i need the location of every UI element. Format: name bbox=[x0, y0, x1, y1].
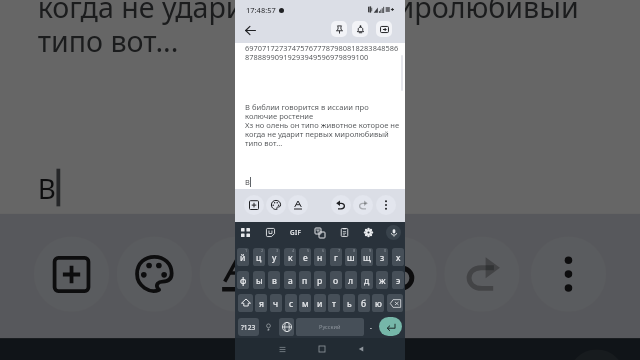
button[interactable]: Enter bbox=[379, 317, 402, 336]
button[interactable]: More bbox=[376, 195, 396, 215]
button[interactable]: Stickers bbox=[263, 225, 278, 240]
button[interactable]: х bbox=[392, 248, 404, 266]
button[interactable]: Undo bbox=[331, 195, 351, 215]
staticText: к bbox=[288, 252, 293, 264]
button[interactable]: ю bbox=[372, 294, 384, 312]
button[interactable]: Reminder bbox=[352, 21, 368, 37]
button[interactable]: щ bbox=[361, 248, 373, 266]
button[interactable]: й bbox=[237, 248, 249, 266]
button[interactable]: в bbox=[268, 271, 280, 289]
button[interactable]: GIF bbox=[199, 349, 256, 360]
button[interactable]: Format bbox=[288, 195, 308, 215]
staticText: 1 bbox=[245, 248, 248, 253]
button[interactable]: Change language bbox=[279, 318, 294, 336]
button[interactable]: я bbox=[255, 294, 267, 312]
button[interactable]: Add bbox=[244, 195, 264, 215]
staticText: 5 bbox=[307, 248, 310, 253]
button[interactable]: е bbox=[299, 248, 311, 266]
staticText: Русский bbox=[319, 323, 341, 331]
button[interactable]: Period bbox=[366, 318, 375, 336]
button[interactable]: Colour bbox=[117, 236, 192, 312]
button[interactable]: GIF bbox=[288, 225, 303, 240]
staticText: ц bbox=[256, 252, 262, 264]
staticText: 7 bbox=[338, 248, 341, 253]
button[interactable]: Translate bbox=[312, 225, 327, 240]
staticText: 2 bbox=[261, 248, 264, 253]
button[interactable]: д bbox=[361, 271, 373, 289]
button[interactable]: ф bbox=[237, 271, 249, 289]
staticText: ж bbox=[379, 275, 386, 287]
button[interactable]: Back bbox=[241, 21, 259, 39]
staticText: и bbox=[317, 298, 323, 310]
staticText: д bbox=[364, 275, 370, 287]
staticText: е bbox=[303, 252, 308, 264]
button[interactable]: л bbox=[345, 271, 357, 289]
button[interactable]: Voice input bbox=[386, 225, 401, 240]
staticText: ю bbox=[375, 298, 382, 310]
staticText: б bbox=[361, 298, 367, 310]
button[interactable]: и bbox=[314, 294, 326, 312]
button[interactable]: з bbox=[376, 248, 388, 266]
staticText: В библии говорится в иссаии про колючие … bbox=[245, 102, 400, 149]
staticText: 6 bbox=[322, 248, 325, 253]
staticText: 697071727374757677787980818283848586 878… bbox=[245, 43, 399, 62]
button[interactable]: Translate bbox=[290, 349, 346, 360]
button[interactable]: у bbox=[268, 248, 280, 266]
staticText: 8 bbox=[353, 248, 356, 253]
button[interactable]: Recents bbox=[274, 341, 290, 357]
button[interactable]: Archive bbox=[376, 21, 392, 37]
button[interactable]: Voice input bbox=[568, 349, 625, 360]
button[interactable]: п bbox=[299, 271, 311, 289]
button[interactable]: р bbox=[314, 271, 326, 289]
button[interactable]: с bbox=[285, 294, 297, 312]
button[interactable]: More bbox=[531, 236, 606, 312]
staticText: GIF bbox=[290, 228, 302, 237]
button[interactable]: Redo bbox=[353, 195, 373, 215]
staticText: х bbox=[396, 252, 401, 264]
staticText: В библии говорится в иссаии про колючие … bbox=[38, 0, 621, 63]
button[interactable]: ш bbox=[345, 248, 357, 266]
button[interactable]: Backspace bbox=[387, 294, 403, 312]
button[interactable]: Clipboard bbox=[337, 225, 352, 240]
button[interactable]: Back bbox=[353, 341, 369, 357]
button[interactable]: Apps bbox=[238, 225, 253, 240]
button[interactable]: н bbox=[314, 248, 326, 266]
button[interactable]: Shift bbox=[238, 294, 253, 312]
staticText: п bbox=[302, 275, 308, 287]
staticText: а bbox=[288, 275, 293, 287]
button[interactable]: б bbox=[358, 294, 370, 312]
staticText: 4 bbox=[292, 248, 295, 253]
button[interactable]: ч bbox=[270, 294, 282, 312]
button[interactable]: Comma bbox=[264, 318, 273, 336]
staticText: ч bbox=[273, 298, 279, 310]
button[interactable]: г bbox=[330, 248, 342, 266]
button[interactable]: Clipboard bbox=[384, 349, 440, 360]
button[interactable]: Pin bbox=[331, 21, 347, 37]
staticText: р bbox=[317, 275, 323, 287]
button[interactable]: ы bbox=[253, 271, 265, 289]
button[interactable]: Home bbox=[314, 341, 330, 357]
button[interactable]: а bbox=[284, 271, 296, 289]
button[interactable]: ь bbox=[343, 294, 355, 312]
button[interactable]: Redo bbox=[444, 236, 519, 312]
staticText: 17:48:57 bbox=[246, 5, 276, 15]
button[interactable]: м bbox=[299, 294, 311, 312]
button[interactable]: Symbols bbox=[238, 318, 259, 336]
button[interactable]: ж bbox=[376, 271, 388, 289]
button[interactable]: т bbox=[328, 294, 340, 312]
button[interactable]: э bbox=[392, 271, 404, 289]
button[interactable]: ц bbox=[253, 248, 265, 266]
staticText: я bbox=[259, 298, 264, 310]
button[interactable]: Undo bbox=[361, 236, 437, 312]
button[interactable]: Settings bbox=[361, 225, 376, 240]
button[interactable]: Add bbox=[34, 236, 109, 312]
button[interactable]: Colour bbox=[266, 195, 286, 215]
button[interactable]: к bbox=[284, 248, 296, 266]
button[interactable]: о bbox=[330, 271, 342, 289]
staticText: ш bbox=[347, 252, 355, 264]
button[interactable]: Space bbox=[296, 318, 364, 336]
button[interactable]: Format bbox=[199, 236, 275, 312]
